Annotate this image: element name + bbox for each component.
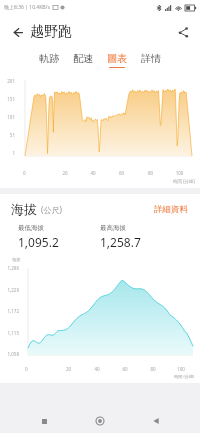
staticText: 60 [111,366,139,372]
staticText: 最低海拔 [18,224,44,232]
staticText: 時間 (分鐘) [173,178,195,184]
staticText: 40 [79,170,107,176]
staticText: 1,286 [2,265,19,271]
staticText: 40 [83,366,111,372]
staticText: (公尺) [41,204,62,215]
staticText: 51 [2,132,15,138]
staticText: 100 [167,366,195,372]
staticText: 20 [51,170,79,176]
staticText: 151 [2,96,15,102]
button[interactable]: 詳情 [141,52,161,68]
staticText: 1,172 [2,308,19,314]
staticText: 80 [139,366,167,372]
button[interactable]: Back [144,409,168,433]
button[interactable]: Back [7,22,27,42]
staticText: 1,115 [2,330,19,336]
staticText: 配速 [73,52,93,65]
staticText: 1 [2,150,15,156]
staticText: 詳細資料 [154,204,188,215]
button[interactable]: Share [173,22,193,42]
staticText: 201 [2,78,15,84]
button[interactable]: 詳細資料 [152,202,190,217]
staticText: 時間 (分鐘) [174,374,195,380]
staticText: 0 [25,366,54,372]
staticText: 1,229 [2,287,19,293]
staticText: 詳情 [141,52,161,65]
staticText: 海拔 [12,257,21,262]
staticText: 80 [136,170,165,176]
staticText: 海拔 [11,201,37,217]
button[interactable]: 配速 [73,52,93,68]
staticText: 1,058 [2,351,19,357]
staticText: 1,258.7 [100,234,141,250]
staticText: 100 [165,170,194,176]
staticText: 晚上8:36 | 10.4KB/s [4,4,50,11]
button[interactable]: Home [88,409,112,433]
staticText: 最高海拔 [100,224,126,232]
staticText: 1,095.2 [18,234,59,250]
button[interactable]: Recent apps [32,409,56,433]
staticText: 越野跑 [30,23,72,41]
staticText: 60 [107,170,136,176]
staticText: 圖表 [107,52,127,65]
staticText: 101 [2,114,15,120]
staticText: 0 [23,170,51,176]
button[interactable]: 圖表 [107,52,127,68]
button[interactable]: 軌跡 [39,52,59,68]
staticText: 軌跡 [39,52,59,65]
staticText: 20 [54,366,83,372]
